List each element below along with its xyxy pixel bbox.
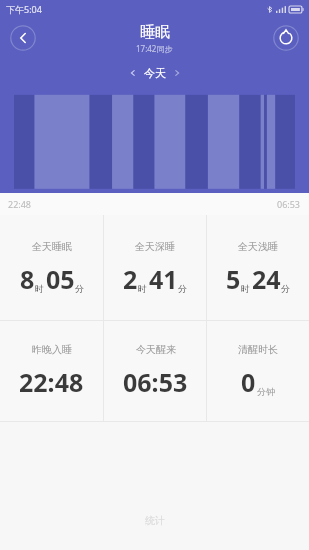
button[interactable]: 全天深睡 [104, 215, 206, 320]
staticText: 时 [138, 283, 147, 294]
staticText: 今天 [144, 66, 166, 80]
button[interactable]: 全天浅睡 [207, 215, 309, 320]
staticText: 下午5:04 [6, 3, 42, 15]
staticText: 全天浅睡 [238, 240, 278, 253]
button[interactable]: 清醒时长 [207, 321, 309, 421]
button[interactable]: Sync [273, 25, 299, 51]
staticText: 06:53 [277, 198, 301, 210]
button[interactable]: 全天睡眠 [0, 215, 103, 320]
staticText: 22:48 [19, 365, 84, 399]
staticText: 昨晚入睡 [32, 343, 72, 356]
staticText: 全天深睡 [135, 240, 175, 253]
staticText: 24 [252, 262, 281, 296]
staticText: 5 [226, 262, 241, 296]
staticText: 时 [241, 283, 250, 294]
staticText: 统计 [145, 514, 165, 527]
staticText: 41 [149, 262, 178, 296]
staticText: 睡眠 [140, 23, 170, 42]
staticText: 05 [46, 262, 75, 296]
staticText: 分 [75, 283, 84, 294]
button[interactable]: 今天醒来 [104, 321, 206, 421]
staticText: 时 [35, 283, 44, 294]
button[interactable]: 昨晚入睡 [0, 321, 103, 421]
button[interactable]: 今天 [121, 63, 189, 83]
staticText: 8 [20, 262, 35, 296]
staticText: 分 [178, 283, 187, 294]
staticText: 今天醒来 [136, 343, 176, 356]
staticText: 清醒时长 [238, 343, 278, 356]
staticText: 06:53 [123, 365, 188, 399]
staticText: 全天睡眠 [32, 240, 72, 253]
staticText: 17:42同步 [136, 43, 173, 54]
staticText: 2 [123, 262, 138, 296]
button[interactable]: Back [10, 25, 36, 51]
staticText: 0 [241, 365, 256, 399]
staticText: 分 [281, 283, 290, 294]
staticText: 22:48 [8, 198, 32, 210]
staticText: 分钟 [257, 386, 275, 397]
